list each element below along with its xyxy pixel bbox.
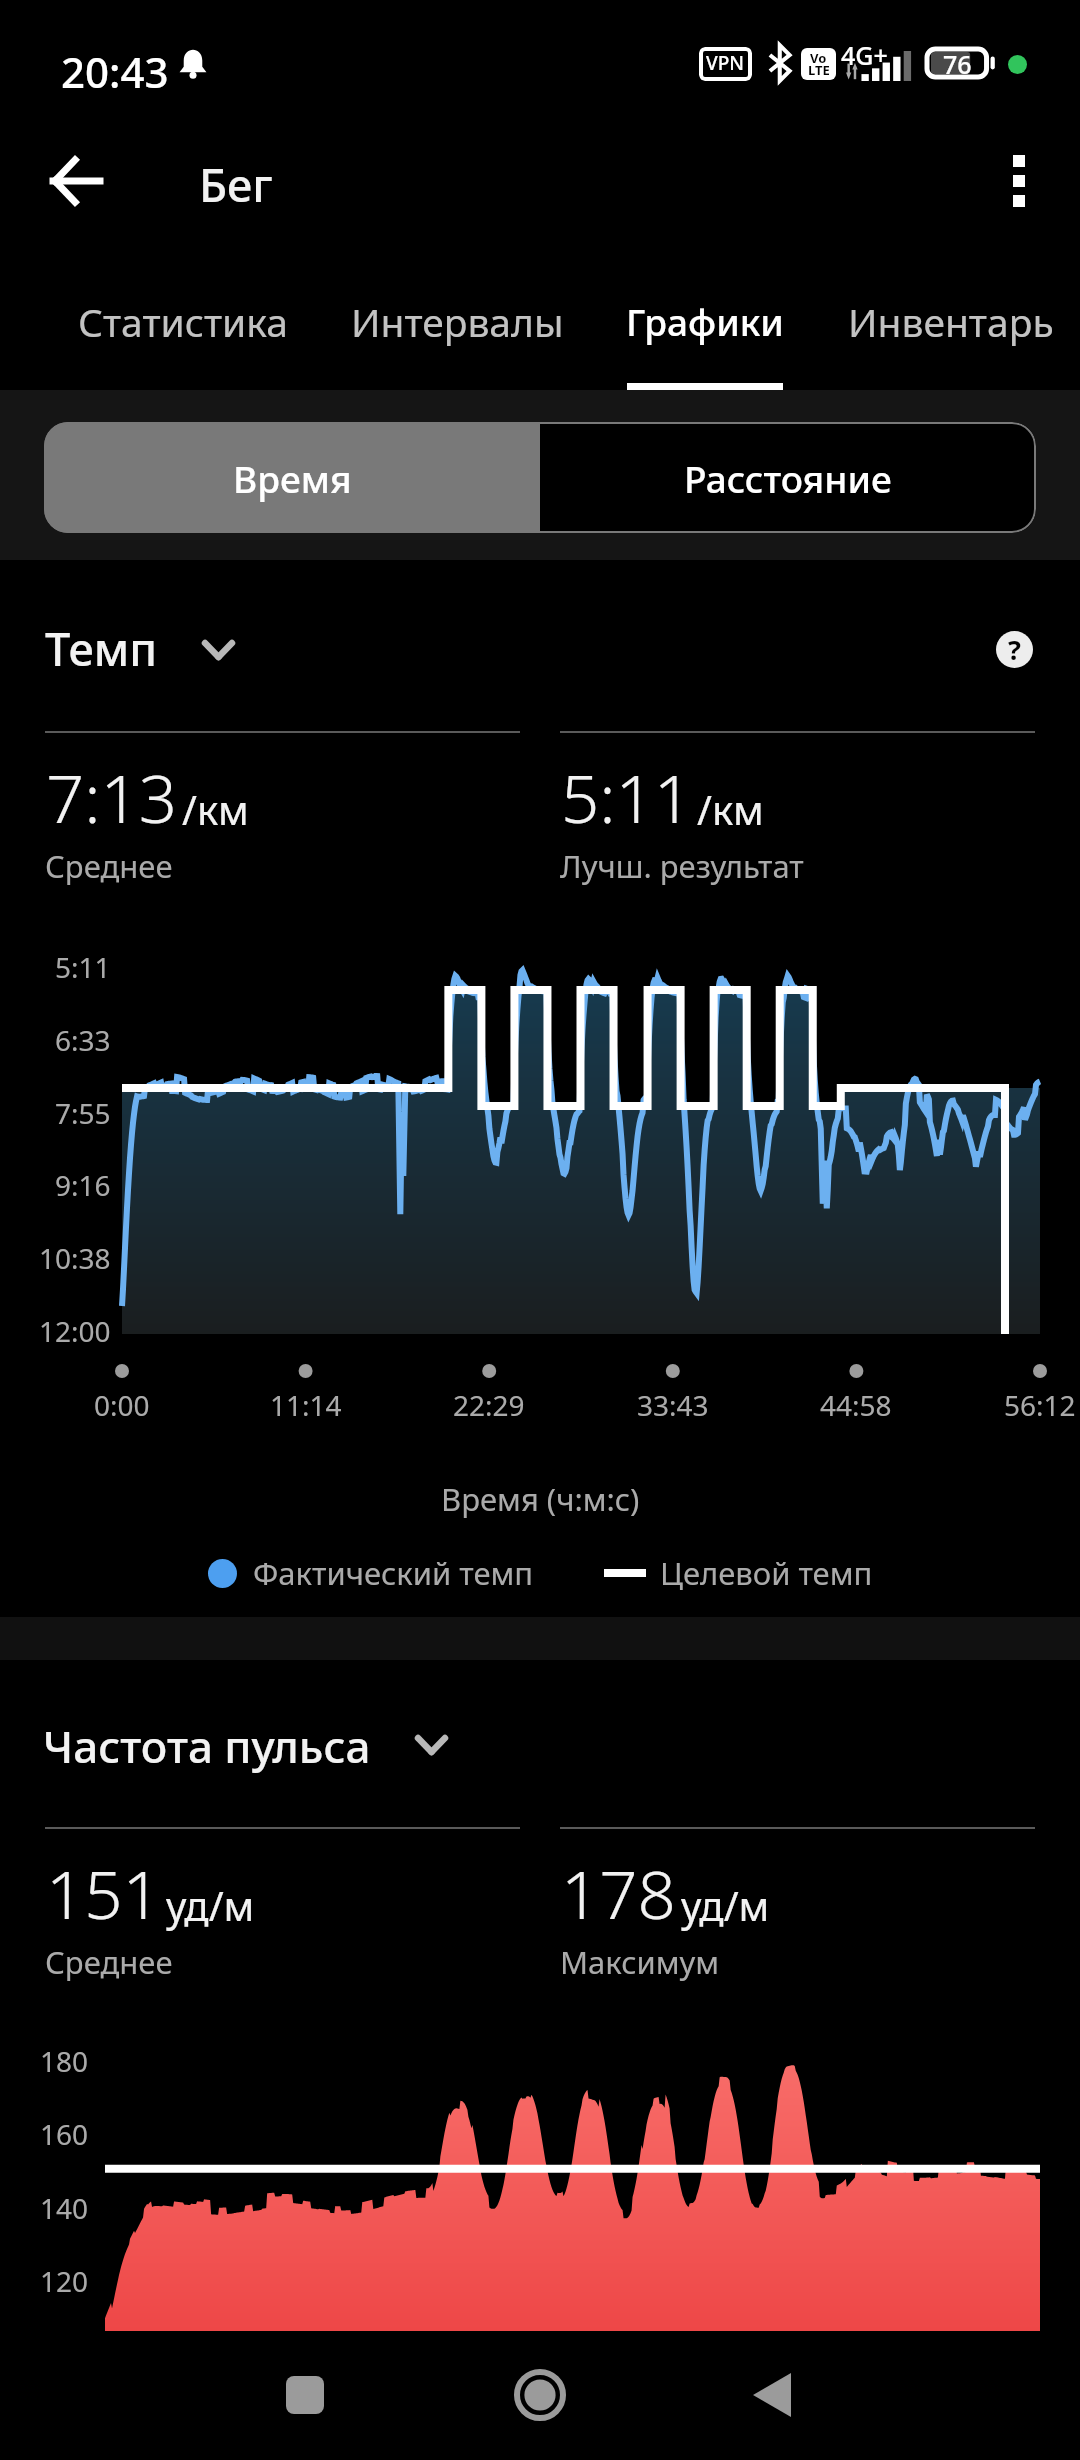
staticText: уд/м bbox=[166, 1878, 255, 1932]
staticText: LTE bbox=[808, 61, 830, 79]
staticText: 140 bbox=[40, 2189, 89, 2227]
button[interactable]: More options bbox=[974, 136, 1064, 226]
staticText: Графики bbox=[626, 296, 784, 346]
staticText: 56:12 bbox=[1004, 1386, 1076, 1424]
button[interactable]: Recent apps bbox=[265, 2355, 345, 2435]
button[interactable]: Back bbox=[732, 2355, 812, 2435]
staticText: 5:11 bbox=[55, 948, 111, 986]
staticText: 0:00 bbox=[94, 1386, 150, 1424]
staticText: Максимум bbox=[560, 1941, 720, 1983]
staticText: Среднее bbox=[45, 845, 173, 887]
staticText: Расстояние bbox=[684, 453, 892, 503]
button[interactable]: Интервалы bbox=[332, 256, 582, 390]
staticText: /км bbox=[182, 782, 249, 836]
button[interactable]: Home bbox=[495, 2350, 585, 2440]
button[interactable]: Время bbox=[44, 422, 540, 533]
staticText: 22:29 bbox=[453, 1386, 525, 1424]
staticText: 33:43 bbox=[637, 1386, 709, 1424]
staticText: Фактический темп bbox=[253, 1552, 534, 1594]
staticText: VPN bbox=[706, 50, 745, 76]
staticText: 160 bbox=[40, 2115, 89, 2153]
staticText: Статистика bbox=[78, 295, 288, 348]
staticText: 10:38 bbox=[39, 1239, 111, 1277]
staticText: 44:58 bbox=[820, 1386, 892, 1424]
button[interactable]: Расстояние bbox=[540, 422, 1036, 533]
staticText: 120 bbox=[40, 2262, 89, 2300]
staticText: Частота пульса bbox=[43, 1716, 371, 1776]
staticText: 12:00 bbox=[39, 1312, 111, 1350]
button[interactable]: Инвентарь bbox=[826, 256, 1076, 390]
staticText: Целевой темп bbox=[660, 1552, 873, 1594]
staticText: 20:43 bbox=[61, 43, 169, 100]
staticText: 7:55 bbox=[55, 1094, 111, 1132]
staticText: 76 bbox=[943, 47, 972, 79]
button[interactable]: Частота пульса bbox=[40, 1713, 465, 1783]
staticText: 7:13 bbox=[46, 751, 178, 842]
staticText: 4G+ bbox=[841, 38, 888, 72]
button[interactable]: Back bbox=[29, 134, 123, 228]
staticText: Темп bbox=[45, 618, 158, 679]
staticText: Среднее bbox=[45, 1941, 173, 1983]
staticText: Бег bbox=[199, 154, 273, 215]
staticText: /км bbox=[697, 782, 764, 836]
staticText: 178 bbox=[561, 1847, 676, 1938]
staticText: 9:16 bbox=[55, 1166, 111, 1204]
staticText: Лучш. результат bbox=[560, 845, 804, 887]
staticText: уд/м bbox=[681, 1878, 770, 1932]
staticText: Инвентарь bbox=[848, 295, 1054, 348]
button[interactable]: Графики bbox=[580, 256, 830, 390]
staticText: 151 bbox=[46, 1847, 161, 1938]
staticText: 5:11 bbox=[561, 751, 693, 842]
staticText: Время bbox=[233, 453, 352, 503]
staticText: 180 bbox=[40, 2042, 89, 2080]
staticText: 11:14 bbox=[270, 1386, 342, 1424]
staticText: 6:33 bbox=[55, 1021, 111, 1059]
button[interactable]: Темп bbox=[40, 616, 250, 686]
button[interactable]: Статистика bbox=[58, 256, 308, 390]
button[interactable]: Help bbox=[996, 631, 1033, 668]
staticText: ? bbox=[1008, 631, 1021, 668]
staticText: Vo bbox=[810, 49, 827, 67]
staticText: Время (ч:м:с) bbox=[441, 1478, 640, 1520]
staticText: Интервалы bbox=[351, 295, 564, 348]
